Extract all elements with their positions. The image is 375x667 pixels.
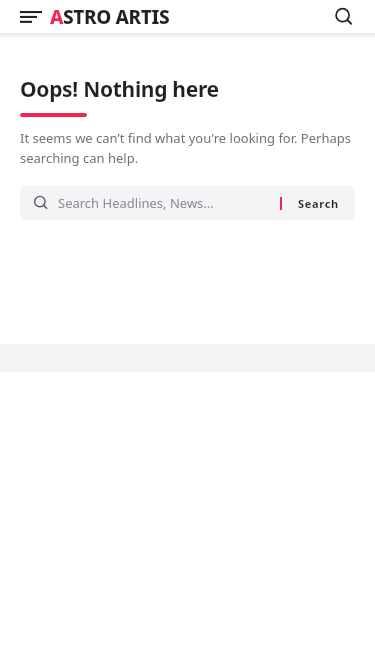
button[interactable]: Menu: [12, 2, 42, 32]
staticText: Oops! Nothing here: [20, 75, 219, 104]
button[interactable]: ASTRO ARTIS: [50, 4, 170, 30]
button[interactable]: Search: [330, 3, 358, 31]
staticText: Search Headlines, News...: [58, 194, 214, 212]
staticText: It seems we can’t find what you're looki…: [20, 129, 353, 167]
button[interactable]: Search Headlines, News...: [20, 186, 355, 220]
staticText: ASTRO ARTIS: [50, 4, 170, 30]
button[interactable]: Search: [282, 196, 355, 211]
staticText: Search: [298, 196, 339, 211]
